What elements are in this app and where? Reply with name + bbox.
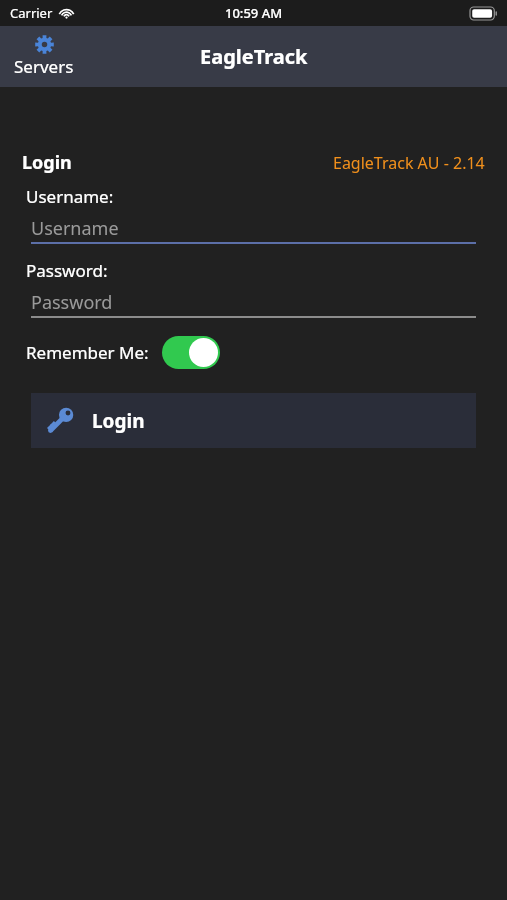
staticText: Carrier xyxy=(10,4,53,22)
button[interactable]: Password xyxy=(31,288,476,318)
staticText: Login xyxy=(92,408,145,434)
button[interactable]: Servers xyxy=(6,33,82,80)
staticText: Username xyxy=(31,216,119,241)
button[interactable]: Username xyxy=(31,214,476,244)
staticText: Password xyxy=(31,290,113,315)
button[interactable]: Login xyxy=(31,393,476,448)
staticText: EagleTrack xyxy=(200,43,308,70)
staticText: Servers xyxy=(14,55,74,78)
staticText: Username: xyxy=(26,185,114,208)
staticText: Password: xyxy=(26,259,108,282)
button[interactable]: Remember Me toggle xyxy=(162,336,220,369)
staticText: EagleTrack AU - 2.14 xyxy=(333,152,485,174)
staticText: Login xyxy=(22,150,72,175)
staticText: 10:59 AM xyxy=(225,4,283,22)
staticText: Remember Me: xyxy=(26,341,149,364)
